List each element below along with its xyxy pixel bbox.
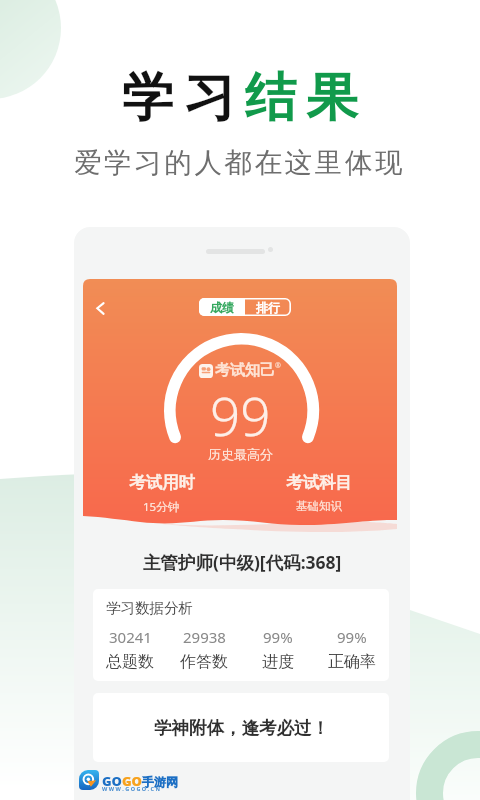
- staticText: 总题数: [106, 652, 154, 672]
- staticText: 学神附体，逢考必过！: [154, 717, 329, 739]
- staticText: 99%: [337, 627, 367, 647]
- staticText: W W W . G O G O . C N: [102, 785, 161, 792]
- staticText: 15分钟: [143, 499, 180, 515]
- staticText: 考试知己: [215, 361, 275, 380]
- staticText: 正确率: [328, 652, 376, 672]
- staticText: 学习: [117, 65, 240, 130]
- staticText: 主管护师(中级)[代码:368]: [143, 550, 342, 574]
- staticText: 进度: [262, 652, 294, 672]
- staticText: 结果: [240, 65, 363, 130]
- staticText: 考试用时: [129, 472, 195, 493]
- button[interactable]: 排行: [245, 298, 291, 316]
- staticText: ®: [275, 361, 281, 371]
- staticText: 排行: [256, 300, 280, 315]
- staticText: 29938: [183, 627, 226, 647]
- staticText: 99%: [263, 627, 293, 647]
- staticText: 成绩: [210, 300, 234, 315]
- staticText: GO: [122, 772, 142, 790]
- staticText: 考试科目: [286, 472, 352, 493]
- staticText: 99: [210, 379, 271, 451]
- staticText: 历史最高分: [208, 446, 273, 462]
- button[interactable]: 学神附体，逢考必过！: [93, 693, 389, 762]
- button[interactable]: 学习数据分析: [93, 589, 389, 681]
- staticText: 30241: [109, 627, 152, 647]
- staticText: GO: [102, 772, 122, 790]
- button[interactable]: 成绩: [199, 298, 245, 316]
- button[interactable]: Back: [84, 288, 114, 318]
- staticText: 学习数据分析: [106, 599, 193, 617]
- staticText: 手游网: [142, 774, 178, 789]
- staticText: 作答数: [180, 652, 228, 672]
- staticText: 基础知识: [296, 499, 342, 513]
- staticText: 爱学习的人都在这里体现: [74, 146, 406, 181]
